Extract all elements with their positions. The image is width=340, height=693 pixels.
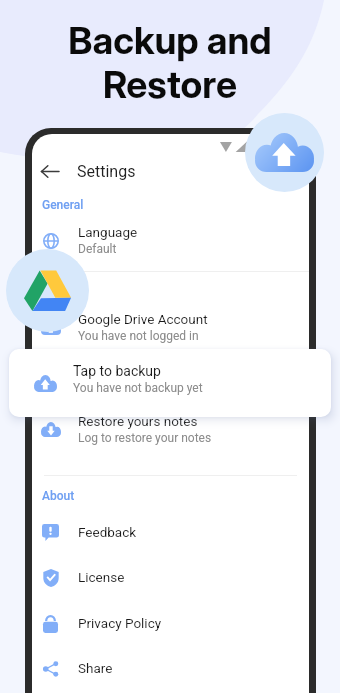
button[interactable]: Google Drive xyxy=(6,249,89,332)
staticText: Restore yours notes xyxy=(78,413,198,429)
staticText: Tap to backup xyxy=(78,380,154,394)
staticText: Backup your notes xyxy=(78,362,190,378)
staticText: Language xyxy=(78,224,138,240)
button[interactable]: Share xyxy=(32,646,309,690)
staticText: You have not backup yet xyxy=(73,381,203,395)
staticText: License xyxy=(78,569,125,585)
staticText: General xyxy=(42,198,84,212)
button[interactable]: Back xyxy=(36,157,64,185)
button[interactable]: Google Drive Account xyxy=(32,305,309,349)
staticText: You have not logged in xyxy=(78,329,199,343)
button[interactable]: Restore yours notes xyxy=(32,407,309,451)
staticText: Backup and Restore xyxy=(68,18,272,107)
staticText: Feedback xyxy=(78,524,137,540)
staticText: Log to restore your notes xyxy=(78,431,212,445)
button[interactable]: Privacy Policy xyxy=(32,601,309,645)
button[interactable]: Backup your notes xyxy=(32,356,309,400)
button[interactable]: Tap to backup xyxy=(9,349,331,417)
staticText: Tap to backup xyxy=(73,363,161,379)
staticText: Privacy Policy xyxy=(78,615,162,631)
staticText: Settings xyxy=(77,162,136,181)
button[interactable]: Backup to cloud xyxy=(245,113,324,192)
button[interactable]: Feedback xyxy=(32,510,309,554)
staticText: Google Drive Account xyxy=(78,311,208,327)
button[interactable]: License xyxy=(32,555,309,599)
staticText: Share xyxy=(78,660,113,676)
button[interactable]: Language xyxy=(32,218,309,262)
staticText: Default xyxy=(78,242,117,256)
staticText: About xyxy=(42,489,75,503)
